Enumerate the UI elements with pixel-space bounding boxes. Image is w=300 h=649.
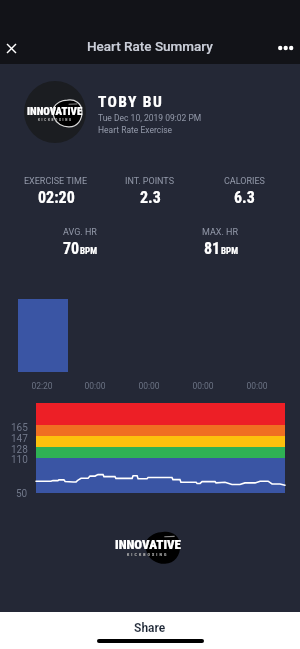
- staticText: 110: [11, 454, 28, 466]
- staticText: Tue Dec 10, 2019 09:02 PM: [98, 113, 202, 123]
- staticText: 00:00: [192, 381, 214, 391]
- staticText: 00:00: [138, 381, 160, 391]
- staticText: KICKBOXING: [127, 552, 169, 557]
- staticText: Heart Rate Exercise: [98, 125, 173, 135]
- staticText: 50: [16, 488, 28, 500]
- staticText: EXERCISE TIME: [24, 176, 88, 187]
- staticText: INT. POINTS: [125, 176, 175, 187]
- staticText: 6.3: [234, 188, 255, 207]
- staticText: 147: [11, 433, 28, 445]
- button[interactable]: Close: [0, 30, 29, 66]
- staticText: BPM: [221, 246, 238, 257]
- staticText: 81: [204, 239, 221, 258]
- staticText: KICKBOXING: [38, 118, 73, 122]
- staticText: 00:00: [246, 381, 268, 391]
- staticText: Share: [134, 621, 166, 635]
- staticText: AVG. HR: [63, 227, 97, 238]
- staticText: Heart Rate Summary: [87, 38, 213, 54]
- staticText: BPM: [80, 246, 97, 257]
- staticText: 70: [63, 239, 80, 258]
- button[interactable]: Share: [0, 612, 300, 649]
- staticText: INNOVATIVE: [115, 537, 181, 552]
- staticText: 128: [11, 444, 28, 456]
- staticText: 02:20: [38, 188, 75, 207]
- staticText: INNOVATIVE: [27, 105, 83, 118]
- staticText: 00:00: [84, 381, 106, 391]
- staticText: CALORIES: [224, 176, 265, 187]
- button[interactable]: More options: [264, 30, 300, 66]
- staticText: 02:20: [31, 381, 53, 391]
- staticText: MAX. HR: [202, 227, 239, 238]
- staticText: 165: [11, 422, 28, 434]
- staticText: 2.3: [140, 188, 161, 207]
- staticText: TOBY BU: [98, 93, 164, 111]
